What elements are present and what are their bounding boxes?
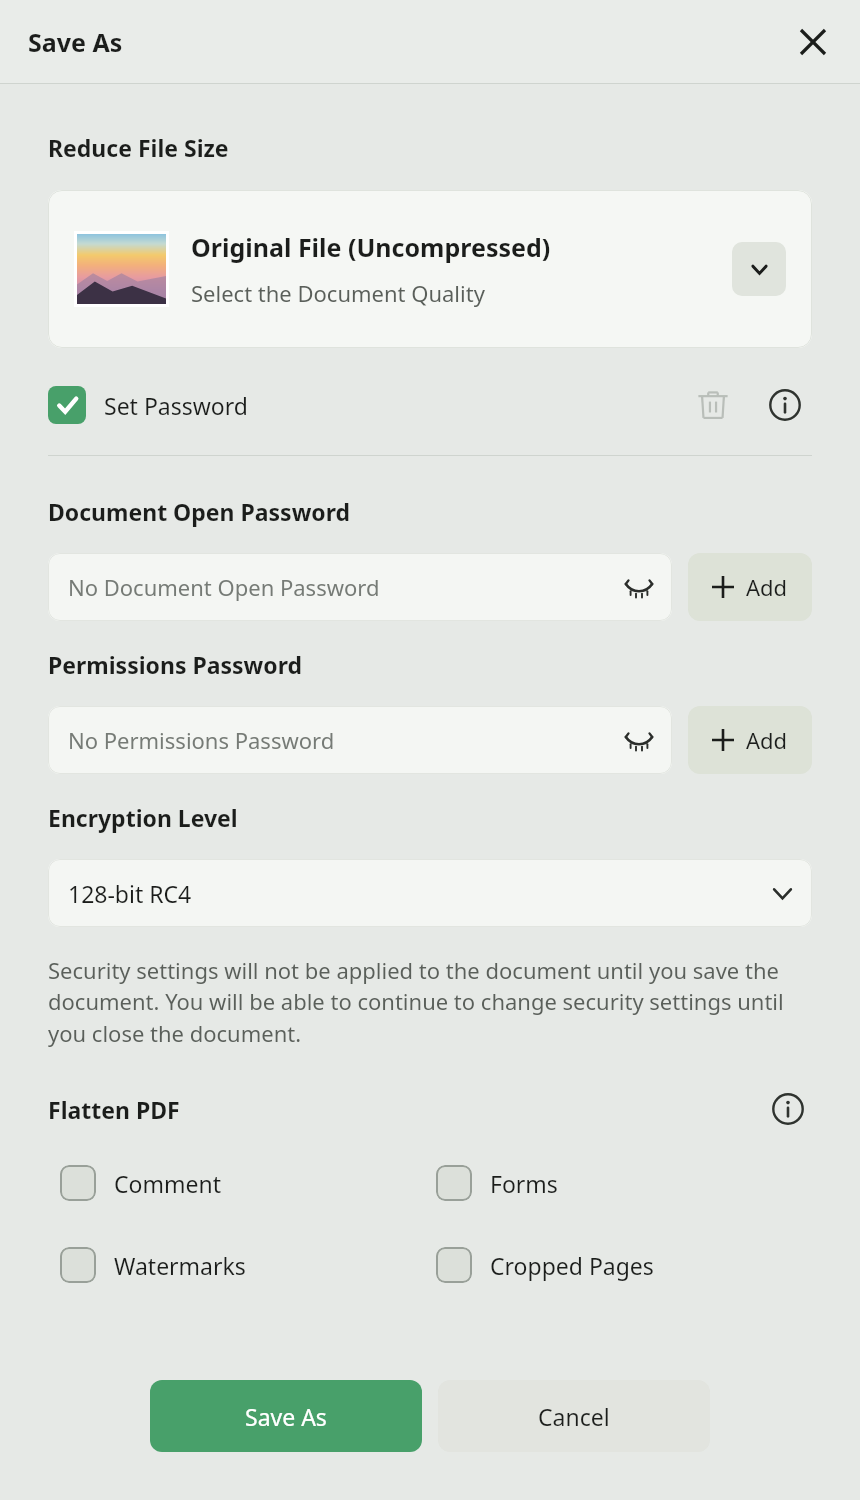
staticText: No Document Open Password — [68, 572, 620, 602]
button[interactable]: Cancel — [438, 1380, 710, 1452]
button[interactable]: Delete password — [686, 378, 740, 432]
button[interactable]: Password information — [758, 378, 812, 432]
staticText: Encryption Level — [48, 802, 238, 833]
staticText: Document Open Password — [48, 496, 351, 527]
button[interactable]: No Document Open Password — [48, 553, 672, 621]
button[interactable]: 128-bit RC4 — [48, 859, 812, 927]
button[interactable]: Comment — [60, 1165, 436, 1201]
button[interactable]: Choose document quality — [732, 242, 786, 296]
staticText: Original File (Uncompressed) — [191, 230, 551, 264]
staticText: Comment — [114, 1168, 221, 1199]
staticText: Forms — [490, 1168, 558, 1199]
button[interactable]: Set Password — [48, 386, 686, 424]
staticText: Save As — [245, 1401, 327, 1432]
staticText: Add — [746, 572, 788, 602]
button[interactable]: Forms — [436, 1165, 812, 1201]
staticText: 128-bit RC4 — [68, 878, 773, 909]
staticText: Cancel — [538, 1401, 610, 1432]
staticText: Watermarks — [114, 1250, 246, 1281]
button[interactable]: Show password — [620, 721, 658, 759]
staticText: Set Password — [104, 390, 248, 421]
staticText: Reduce File Size — [48, 132, 229, 163]
staticText: Security settings will not be applied to… — [48, 955, 812, 1049]
button[interactable]: Watermarks — [60, 1247, 436, 1283]
button[interactable]: Add — [688, 553, 812, 621]
button[interactable]: No Permissions Password — [48, 706, 672, 774]
button[interactable]: Save As — [150, 1380, 422, 1452]
button[interactable]: Original File (Uncompressed) — [48, 190, 812, 348]
staticText: No Permissions Password — [68, 725, 620, 755]
button[interactable]: Show password — [620, 568, 658, 606]
staticText: Select the Document Quality — [191, 278, 485, 308]
button[interactable]: Flatten PDF information — [764, 1085, 812, 1133]
staticText: Flatten PDF — [48, 1094, 764, 1125]
button[interactable]: Cropped Pages — [436, 1247, 812, 1283]
staticText: Permissions Password — [48, 649, 302, 680]
button[interactable]: Close — [786, 15, 840, 69]
staticText: Save As — [28, 25, 123, 59]
staticText: Add — [746, 725, 788, 755]
staticText: Cropped Pages — [490, 1250, 654, 1281]
button[interactable]: Add — [688, 706, 812, 774]
